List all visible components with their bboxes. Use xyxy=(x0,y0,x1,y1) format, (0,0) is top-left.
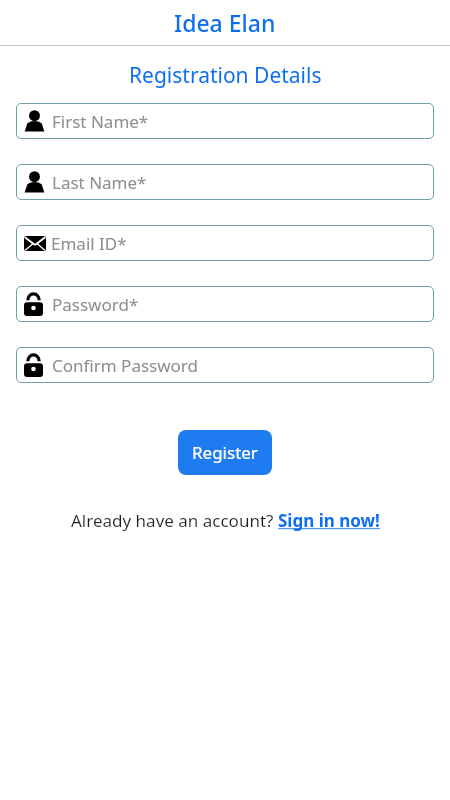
button[interactable]: Email ID* xyxy=(16,225,434,261)
staticText: Already have an account? xyxy=(71,509,278,532)
staticText: Last Name* xyxy=(52,171,147,194)
staticText: Sign in now! xyxy=(278,509,380,532)
button[interactable]: Sign in now! xyxy=(278,509,380,532)
button[interactable]: Confirm Password xyxy=(16,347,434,383)
staticText: First Name* xyxy=(52,110,149,133)
staticText: Register xyxy=(192,441,258,464)
button[interactable]: First Name* xyxy=(16,103,434,139)
staticText: Registration Details xyxy=(129,61,322,90)
button[interactable]: Register xyxy=(178,430,272,475)
staticText: Email ID* xyxy=(51,232,127,255)
staticText: Idea Elan xyxy=(174,7,276,38)
staticText: Password* xyxy=(52,293,139,316)
button[interactable]: Last Name* xyxy=(16,164,434,200)
button[interactable]: Password* xyxy=(16,286,434,322)
staticText: Confirm Password xyxy=(52,354,198,377)
